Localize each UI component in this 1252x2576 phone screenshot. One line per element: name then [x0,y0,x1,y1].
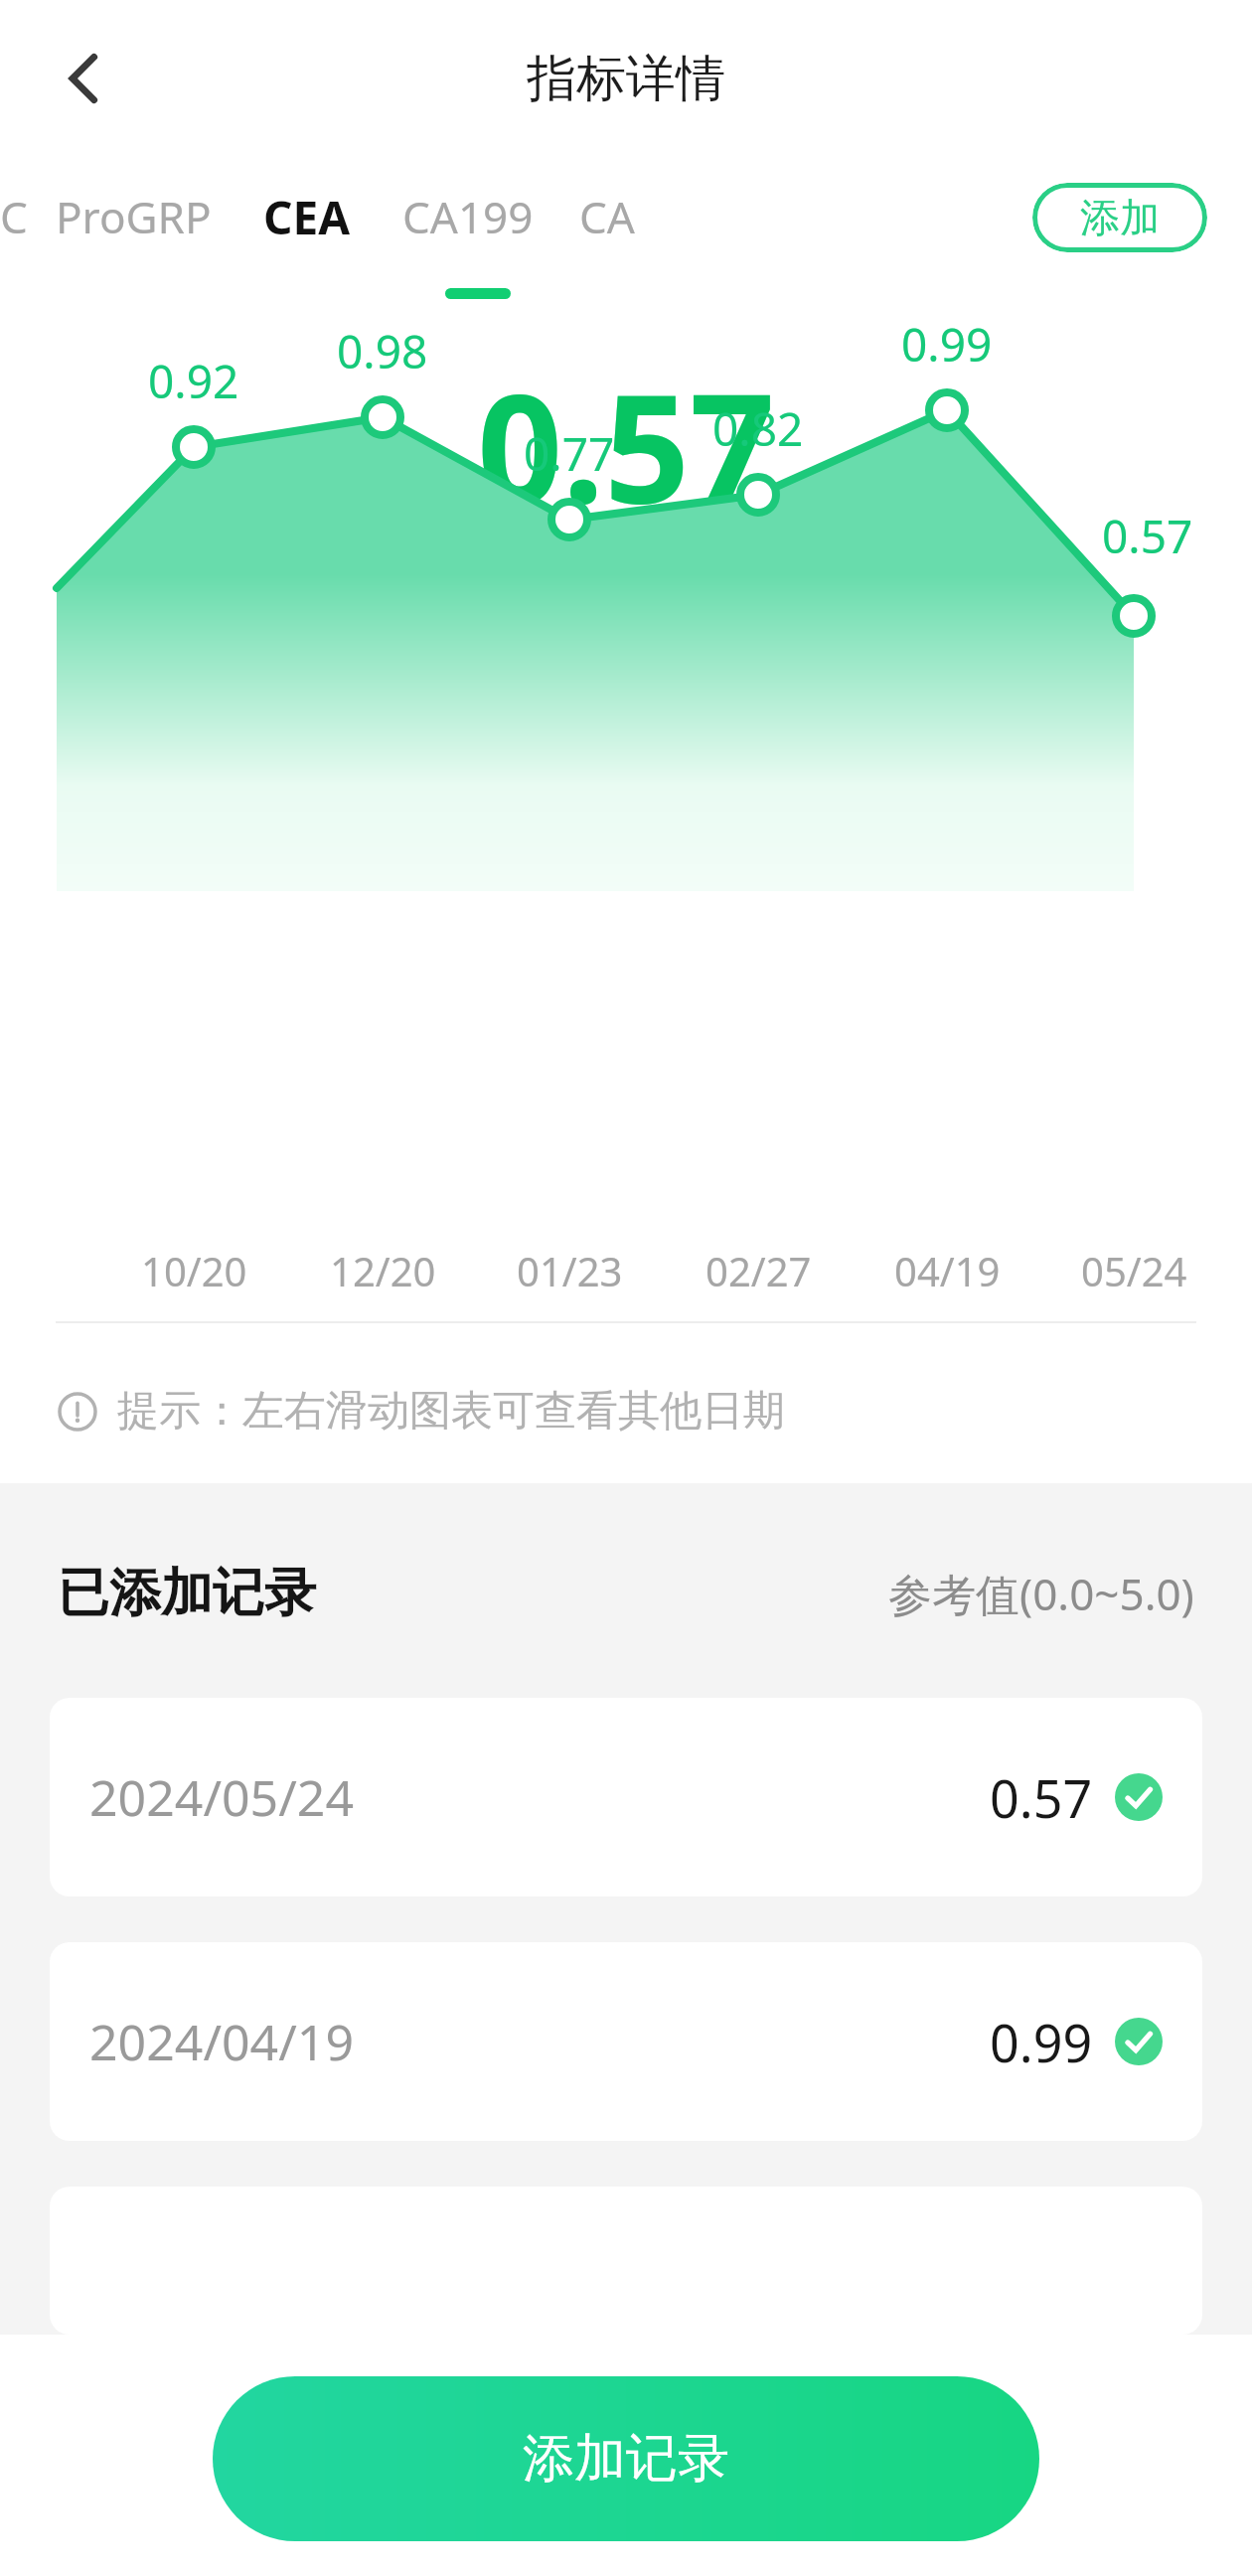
staticText: 0.99 [901,313,993,376]
button[interactable]: C [0,157,24,276]
staticText: CA199 [402,187,534,246]
staticText: 2024/05/24 [89,1763,354,1831]
staticText: 04/19 [894,1244,1001,1297]
staticText: 0.82 [712,397,804,460]
staticText: 添加 [1080,193,1160,242]
button[interactable]: Back [30,24,139,133]
staticText: C [0,187,24,246]
staticText: 01/23 [517,1244,623,1297]
button[interactable]: CA199 [402,157,534,276]
button[interactable]: 2024/05/24 [50,1698,1202,1896]
staticText: 0.57 [990,1762,1093,1833]
staticText: 指标详情 [527,48,725,110]
staticText: 0.77 [524,422,615,485]
button[interactable]: ProGRP [56,157,212,276]
staticText: 2024/04/19 [89,2008,354,2075]
staticText: ProGRP [56,187,212,246]
staticText: 10/20 [141,1244,247,1297]
staticText: 12/20 [330,1244,436,1297]
button[interactable]: CEA [263,157,351,276]
staticText: 0.57 [1102,505,1193,567]
staticText: CA [579,187,635,246]
button[interactable]: 添加记录 [213,2376,1039,2541]
staticText: CEA [263,186,351,248]
staticText: 已添加记录 [58,1561,316,1626]
staticText: 提示：左右滑动图表可查看其他日期 [117,1385,785,1438]
button[interactable]: 2024/04/19 [50,1942,1202,2141]
staticText: 02/27 [705,1244,812,1297]
staticText: 0.57 [477,344,775,546]
staticText: 05/24 [1081,1244,1187,1297]
staticText: 添加记录 [523,2426,729,2492]
staticText: 参考值(0.0~5.0) [888,1564,1194,1623]
staticText: 0.92 [148,350,239,412]
staticText: 0.98 [337,320,428,382]
button[interactable]: CA [579,157,657,276]
staticText: 0.99 [990,2007,1093,2077]
button[interactable]: 添加 [1032,183,1207,252]
